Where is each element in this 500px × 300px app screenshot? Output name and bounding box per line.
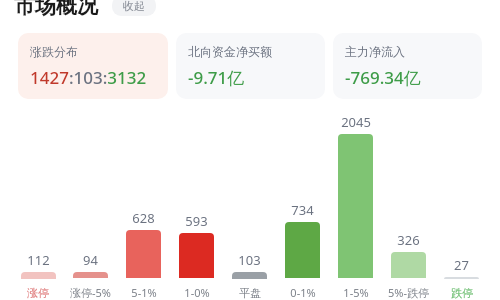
button[interactable] [21,272,56,279]
button[interactable] [126,230,161,278]
staticText: 平盘 [239,286,261,300]
staticText: 跌停 [451,286,473,300]
staticText: 27 [454,256,469,274]
staticText: 主力净流入 [345,44,405,59]
button[interactable] [338,134,373,278]
staticText: 5-1% [131,285,157,300]
staticText: 涨停-5% [70,285,111,300]
button[interactable]: 北向资金净买额 [176,33,325,99]
staticText: 市场概况 [14,0,98,19]
button[interactable]: 收起 [112,0,156,16]
staticText: 2045 [341,113,371,131]
button[interactable] [73,272,108,278]
staticText: 628 [132,209,155,227]
button[interactable] [391,252,426,278]
button[interactable] [285,222,320,278]
button[interactable] [179,233,214,278]
staticText: 326 [397,231,420,249]
staticText: 94 [83,251,98,269]
staticText: 涨停 [27,286,49,300]
button[interactable]: 涨跌分布 [18,33,168,99]
staticText: 593 [185,212,208,230]
staticText: -9.71亿 [188,66,245,89]
staticText: 1-5% [343,285,369,300]
staticText: 734 [291,201,314,219]
staticText: 收起 [123,0,145,13]
staticText: 1-0% [184,285,210,300]
button[interactable] [444,277,479,279]
button[interactable]: 主力净流入 [333,33,482,99]
staticText: 103 [238,251,261,269]
staticText: 1427:103:3132 [30,66,147,89]
staticText: 5%-跌停 [388,285,429,300]
button[interactable] [232,272,267,279]
staticText: 0-1% [290,285,316,300]
staticText: 涨跌分布 [30,44,78,59]
staticText: 北向资金净买额 [188,44,272,59]
staticText: 112 [27,251,50,269]
staticText: -769.34亿 [345,66,421,89]
